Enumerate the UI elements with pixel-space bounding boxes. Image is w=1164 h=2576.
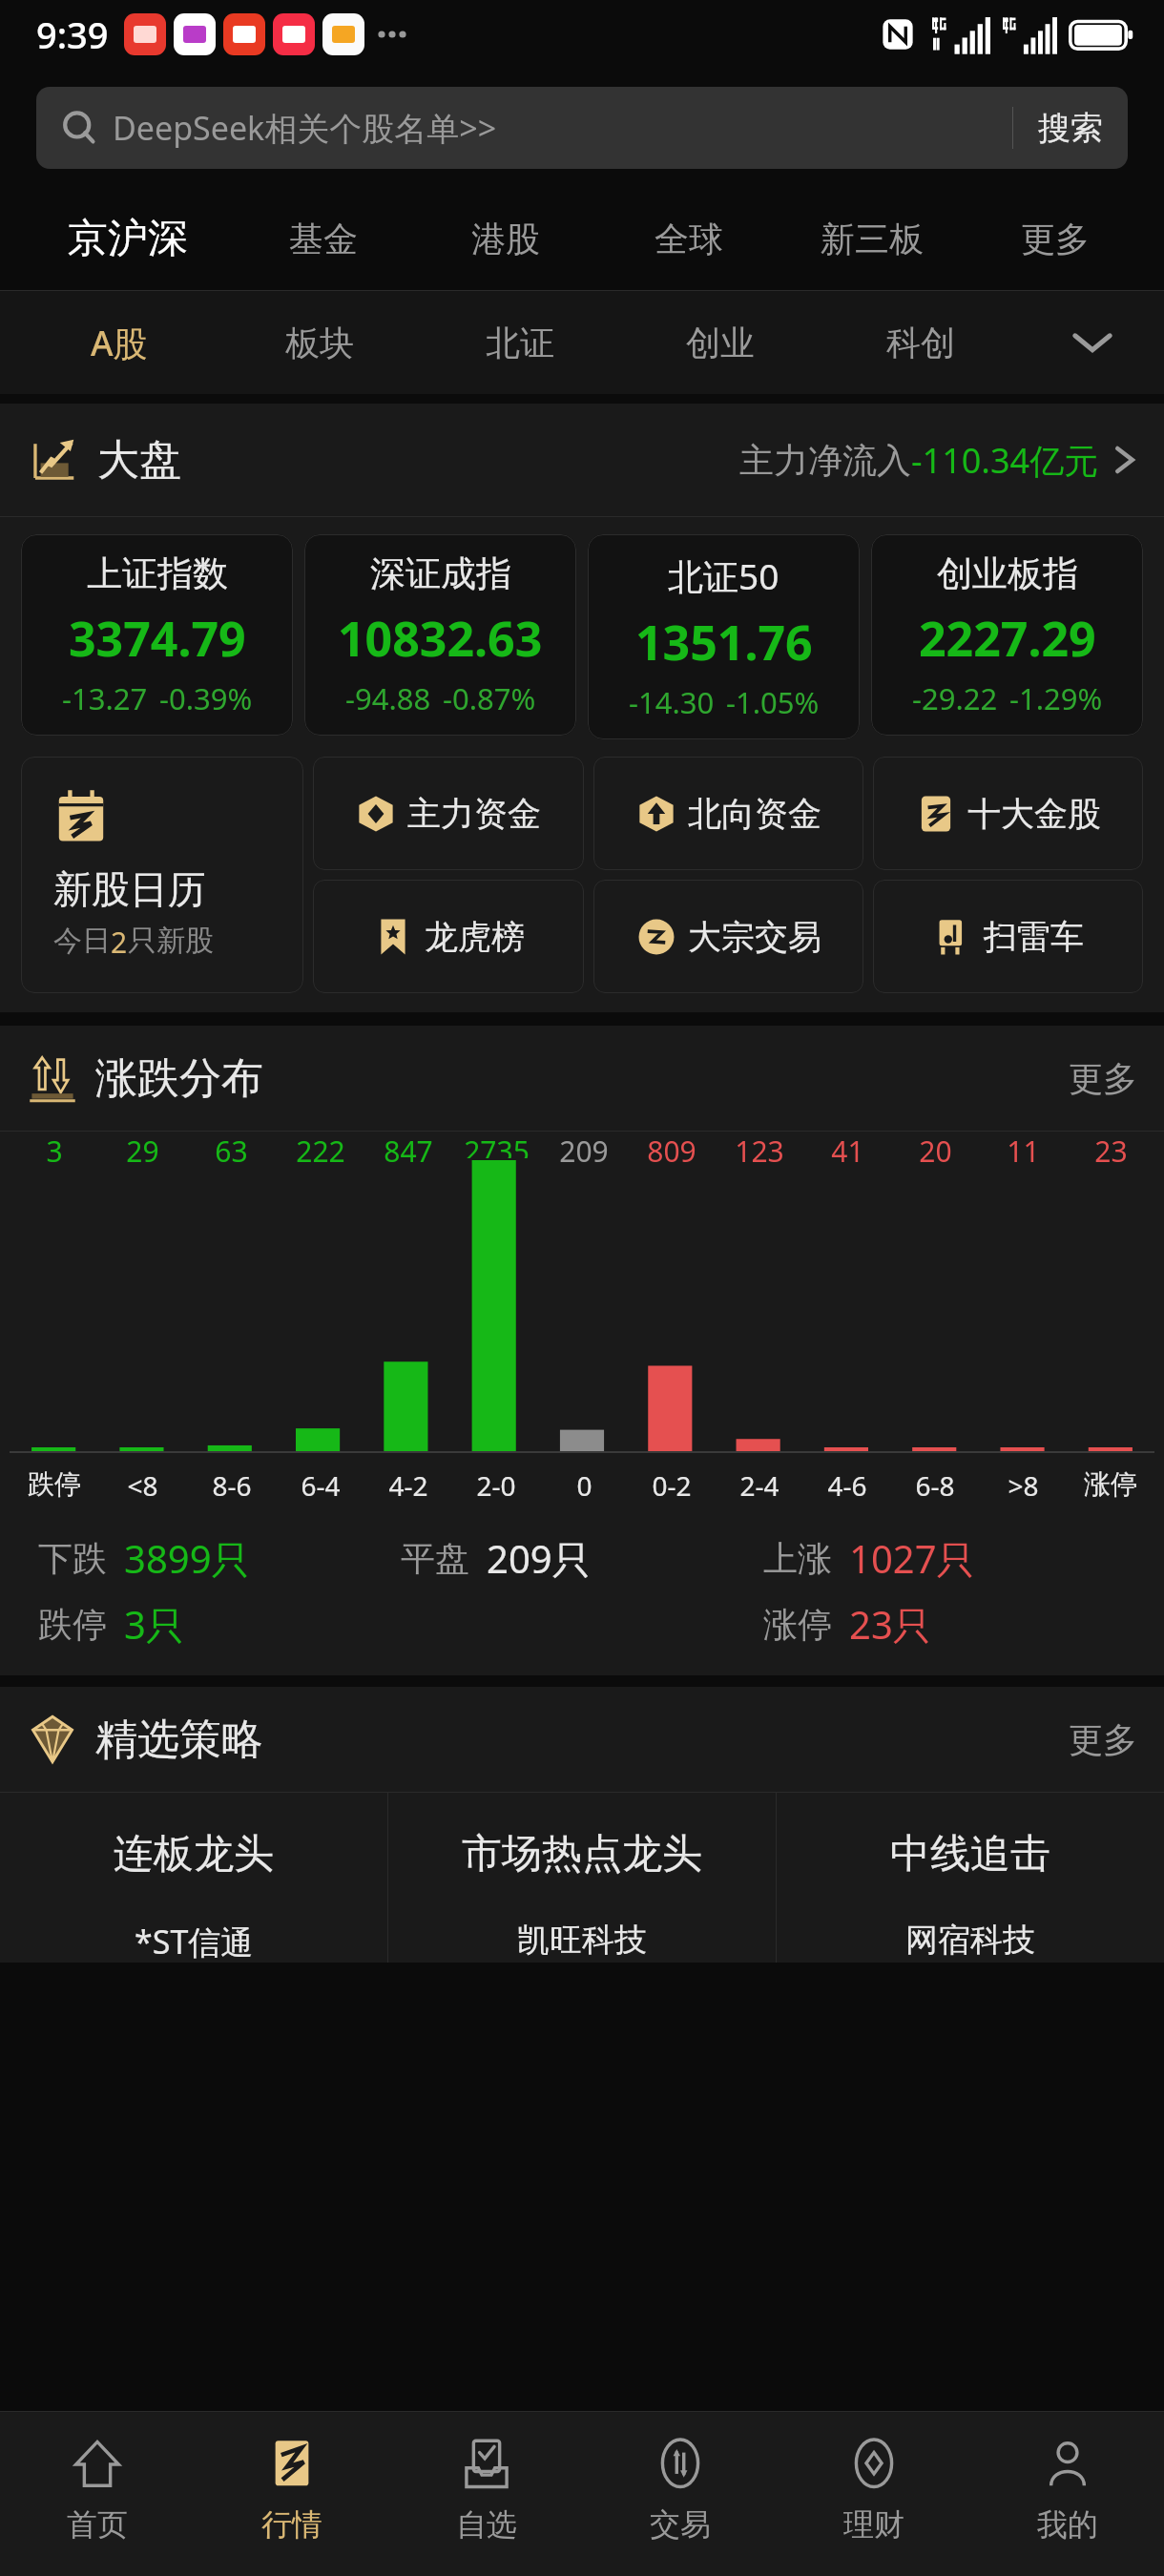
staticText: 中线追击	[890, 1829, 1050, 1880]
staticText: 交易	[650, 2505, 711, 2544]
staticText: 上涨	[763, 1537, 832, 1580]
button[interactable]: 大宗交易	[593, 880, 863, 993]
button[interactable]: 涨跌分布	[0, 1026, 1164, 1131]
staticText: 123	[735, 1132, 784, 1171]
staticText: 6-4	[301, 1467, 341, 1504]
button[interactable]: Expand tabs	[1021, 291, 1164, 394]
button[interactable]: 十大金股	[873, 757, 1143, 870]
staticText: 更多	[1069, 1057, 1137, 1100]
staticText: 41	[831, 1132, 864, 1171]
staticText: A股	[91, 320, 148, 366]
staticText: 只新股	[128, 923, 214, 959]
staticText: DeepSeek相关个股名单>>	[113, 106, 497, 150]
staticText: 209	[559, 1132, 609, 1171]
staticText: 809	[647, 1132, 696, 1171]
button[interactable]: 京沪深	[23, 187, 232, 290]
staticText: 深证成指	[370, 551, 511, 596]
staticText: 4-2	[388, 1467, 428, 1504]
button[interactable]: 市场热点龙头	[388, 1793, 776, 1963]
button[interactable]: 板块	[219, 291, 420, 394]
button[interactable]: 首页	[0, 2412, 195, 2576]
button[interactable]: 科创	[821, 291, 1021, 394]
button[interactable]: DeepSeek相关个股名单>>	[36, 87, 1128, 169]
staticText: 科创	[886, 322, 955, 364]
staticText: -94.88	[345, 678, 431, 718]
button[interactable]: 理财	[777, 2412, 970, 2576]
button[interactable]: 新三板	[780, 187, 964, 290]
staticText: 23	[1094, 1132, 1128, 1171]
button[interactable]: 连板龙头	[0, 1793, 387, 1963]
button[interactable]: 扫雷车	[873, 880, 1143, 993]
staticText: -29.22	[912, 678, 998, 718]
button[interactable]: 交易	[583, 2412, 777, 2576]
staticText: 涨停	[1084, 1467, 1137, 1501]
staticText: 209只	[487, 1532, 591, 1585]
staticText: 全球	[655, 218, 723, 260]
staticText: 10832.63	[338, 606, 543, 671]
staticText: 23只	[849, 1598, 931, 1651]
staticText: 今日	[53, 923, 111, 959]
staticText: 2735	[464, 1132, 530, 1158]
button[interactable]: 北证50	[588, 534, 860, 739]
button[interactable]: 创业	[620, 291, 821, 394]
button[interactable]: 创业板指	[871, 534, 1143, 736]
staticText: 2	[111, 923, 128, 962]
staticText: 北证50	[668, 551, 779, 600]
staticText: 主力净流入	[739, 439, 911, 482]
button[interactable]: 港股	[414, 187, 597, 290]
button[interactable]: A股	[19, 291, 219, 394]
staticText: 大宗交易	[688, 916, 821, 958]
button[interactable]: 上证指数	[21, 534, 293, 736]
button[interactable]: 我的	[970, 2412, 1164, 2576]
button[interactable]: 主力资金	[313, 757, 584, 870]
staticText: 行情	[261, 2505, 322, 2544]
staticText: 我的	[1037, 2505, 1098, 2544]
button[interactable]: 行情	[195, 2412, 389, 2576]
staticText: 2-0	[476, 1467, 516, 1504]
staticText: 1027只	[849, 1532, 975, 1585]
staticText: >8	[1008, 1467, 1039, 1504]
staticText: 平盘	[401, 1537, 469, 1580]
staticText: 2-4	[739, 1467, 779, 1504]
staticText: -13.27	[62, 678, 148, 718]
button[interactable]: 全球	[597, 187, 780, 290]
button[interactable]: 龙虎榜	[313, 880, 584, 993]
staticText: 北证	[486, 322, 554, 364]
staticText: 创业	[686, 322, 755, 364]
button[interactable]: 搜索	[1013, 108, 1128, 149]
button[interactable]: 更多	[964, 187, 1147, 290]
staticText: -0.87%	[443, 678, 536, 718]
staticText: 更多	[1021, 218, 1090, 260]
button[interactable]: 中线追击	[777, 1793, 1164, 1963]
staticText: 龙虎榜	[425, 916, 525, 958]
staticText: 大盘	[97, 434, 181, 487]
staticText: 3	[46, 1132, 63, 1171]
staticText: 2227.29	[919, 606, 1096, 671]
button[interactable]: 北证	[420, 291, 620, 394]
staticText: 十大金股	[967, 793, 1101, 835]
staticText: 北向资金	[688, 793, 821, 835]
staticText: 847	[384, 1132, 433, 1171]
staticText: 主力资金	[407, 793, 541, 835]
staticText: -0.39%	[159, 678, 253, 718]
button[interactable]: 新股日历	[21, 757, 303, 993]
staticText: 新三板	[821, 218, 924, 260]
staticText: 跌停	[28, 1467, 81, 1501]
staticText: 3374.79	[69, 606, 246, 671]
staticText: 下跌	[38, 1537, 107, 1580]
staticText: 凯旺科技	[517, 1920, 647, 1961]
button[interactable]: 北向资金	[593, 757, 863, 870]
staticText: 涨跌分布	[95, 1052, 263, 1105]
button[interactable]: 精选策略	[0, 1687, 1164, 1792]
staticText: 跌停	[38, 1603, 107, 1646]
staticText: 搜索	[1038, 108, 1103, 149]
staticText: 精选策略	[95, 1714, 263, 1766]
staticText: 9:39	[36, 10, 109, 59]
button[interactable]: 深证成指	[304, 534, 576, 736]
button[interactable]: 大盘	[0, 404, 1164, 516]
button[interactable]: 自选	[389, 2412, 583, 2576]
staticText: 8-6	[212, 1467, 252, 1504]
button[interactable]: 基金	[232, 187, 414, 290]
staticText: 创业板指	[937, 551, 1078, 596]
staticText: 涨停	[763, 1603, 832, 1646]
